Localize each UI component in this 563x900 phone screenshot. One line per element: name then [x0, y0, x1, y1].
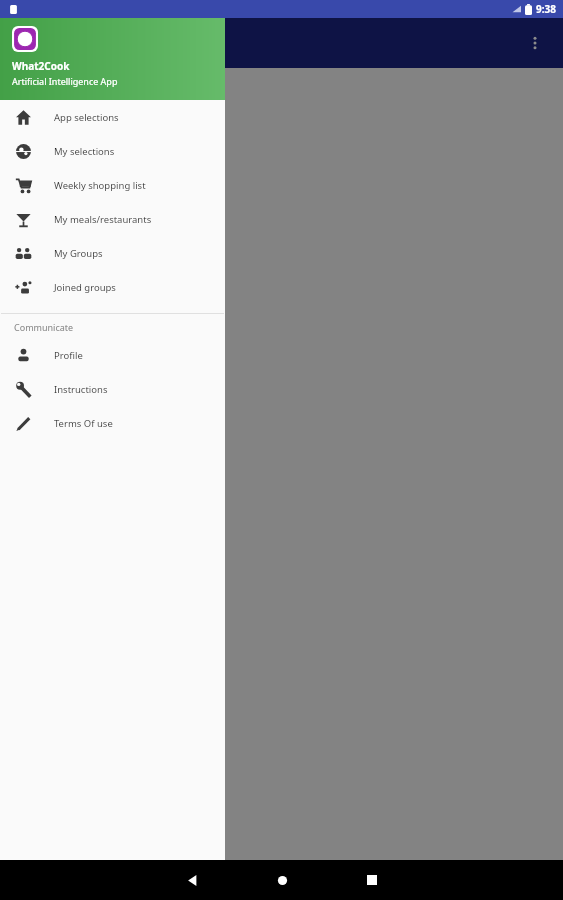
button[interactable]: Breakfast [28, 111, 152, 134]
staticText: HELP [50, 314, 77, 329]
button[interactable]: Profile [0, 338, 225, 372]
button[interactable]: Weekly shopping list [0, 168, 225, 202]
staticText: My Groups [54, 247, 103, 260]
staticText: Lunch [74, 180, 106, 195]
button[interactable]: hmmmm.... next week? [28, 264, 152, 284]
staticText: What2Cook [12, 59, 70, 73]
button[interactable]: UPDATE MY CHOICES [4, 347, 134, 370]
staticText: 9:38 [536, 2, 556, 16]
staticText: Terms Of use [54, 417, 113, 430]
button[interactable]: More options [515, 23, 555, 63]
staticText: Profile [54, 349, 83, 362]
button[interactable]: Joined groups [0, 270, 225, 304]
button[interactable]: My Groups [0, 236, 225, 270]
button[interactable]: hmmmm.... next week? [28, 134, 152, 154]
button[interactable]: Back [162, 860, 222, 900]
staticText: My selections [54, 145, 115, 158]
button[interactable]: Instructions [0, 372, 225, 406]
button[interactable]: Home [252, 860, 312, 900]
staticText: hmmmm.... next week? [32, 139, 120, 150]
staticText: My meals/restaurants [54, 213, 152, 226]
staticText: App selections [54, 111, 119, 124]
staticText: SELECT A DAY [24, 82, 95, 97]
button[interactable]: My meals/restaurants [0, 202, 225, 236]
staticText: Weekly shopping list [54, 179, 146, 192]
button[interactable]: Lunch [28, 176, 152, 199]
staticText: Communicate [14, 321, 74, 333]
button[interactable]: Dinner [28, 241, 152, 264]
staticText: Dinner [72, 245, 108, 260]
staticText: Instructions [54, 383, 108, 396]
button[interactable]: Terms Of use [0, 406, 225, 440]
button[interactable]: Recent apps [342, 860, 402, 900]
button[interactable]: HELP [40, 310, 87, 333]
button[interactable]: App selections [0, 100, 225, 134]
staticText: Artificial Intelligence App [12, 75, 118, 87]
staticText: UPDATE MY CHOICES [14, 351, 124, 366]
button[interactable]: My selections [0, 134, 225, 168]
staticText: Joined groups [54, 281, 116, 294]
button[interactable]: hmmmm.... next week? [28, 199, 152, 219]
staticText: Breakfast [66, 115, 115, 130]
